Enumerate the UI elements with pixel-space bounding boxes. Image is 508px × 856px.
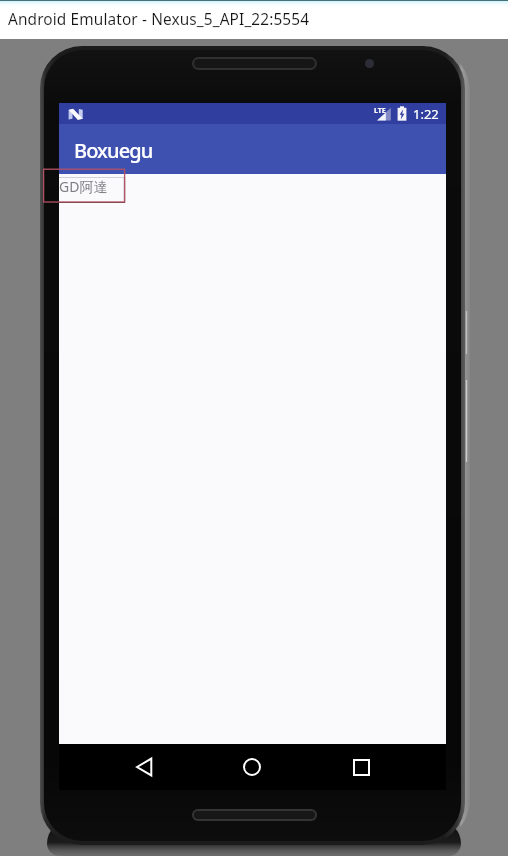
staticText: GD阿達: [59, 177, 108, 196]
button[interactable]: Home: [232, 747, 272, 787]
staticText: 1:22: [413, 105, 439, 123]
button[interactable]: Boxuegu: [59, 124, 446, 174]
staticText: Android Emulator - Nexus_5_API_22:5554: [8, 9, 310, 30]
button[interactable]: Back: [124, 747, 164, 787]
staticText: Boxuegu: [74, 137, 153, 164]
button[interactable]: GD阿達: [59, 177, 125, 203]
staticText: LTE: [374, 106, 386, 116]
button[interactable]: Recent apps: [341, 747, 381, 787]
